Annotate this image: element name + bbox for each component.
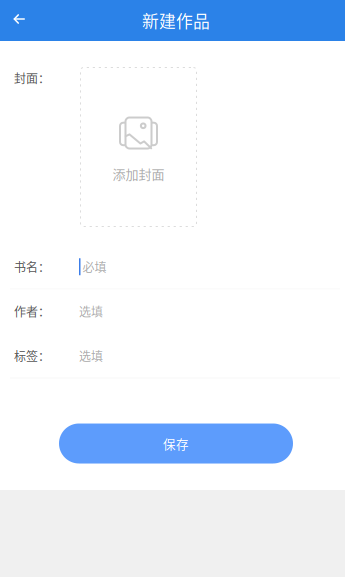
staticText: 选填 [79, 347, 103, 364]
staticText: 添加封面 [112, 164, 164, 183]
button[interactable]: 书名： [0, 245, 345, 288]
staticText: 标签： [14, 347, 50, 364]
staticText: 书名： [14, 258, 50, 275]
button[interactable]: 标签： [0, 334, 345, 377]
staticText: 封面： [14, 69, 50, 87]
staticText: 选填 [79, 303, 103, 320]
button[interactable]: Add cover [80, 67, 197, 227]
staticText: 保存 [163, 434, 189, 452]
staticText: 作者： [14, 303, 50, 320]
button[interactable]: Back [0, 0, 44, 41]
staticText: 必填 [82, 258, 106, 275]
button[interactable]: 保存 [59, 423, 293, 463]
button[interactable]: 作者： [0, 289, 345, 333]
staticText: 新建作品 [142, 8, 210, 33]
